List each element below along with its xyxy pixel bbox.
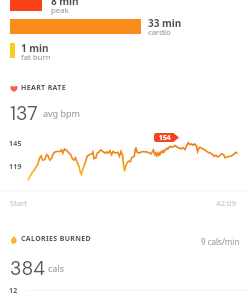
staticText: 33 min: [148, 16, 182, 30]
staticText: 42:09: [216, 198, 236, 209]
staticText: 1 min: [21, 41, 49, 55]
staticText: peak: [51, 5, 69, 16]
staticText: 119: [9, 162, 22, 172]
staticText: 9 cals/min: [201, 236, 240, 247]
other: Heart rate: [10, 85, 18, 92]
staticText: 8 min: [51, 0, 79, 8]
staticText: fat burn: [21, 52, 51, 63]
staticText: cardio: [148, 27, 171, 38]
staticText: 12: [9, 286, 18, 296]
staticText: cals: [48, 262, 65, 274]
other: Calories burned: [10, 236, 17, 244]
staticText: 145: [9, 139, 22, 149]
staticText: HEART RATE: [21, 83, 66, 93]
staticText: 384: [10, 256, 46, 281]
staticText: CALORIES BURNED: [21, 234, 92, 244]
staticText: Start: [10, 198, 28, 208]
staticText: avg bpm: [43, 107, 80, 119]
staticText: 154: [159, 133, 171, 142]
staticText: 137: [10, 101, 38, 126]
